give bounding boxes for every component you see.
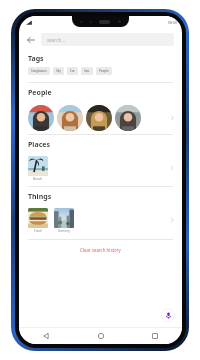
button[interactable]: Sea bbox=[81, 67, 93, 75]
staticText: People bbox=[99, 69, 109, 73]
button[interactable]: Home bbox=[94, 329, 108, 343]
button[interactable]: search... bbox=[41, 33, 174, 46]
button[interactable]: Person 4 bbox=[115, 105, 141, 131]
staticText: Car bbox=[70, 69, 75, 73]
button[interactable]: Recents bbox=[148, 329, 162, 343]
button[interactable]: See more bbox=[166, 214, 178, 226]
button[interactable]: Back bbox=[39, 329, 53, 343]
staticText: Beach bbox=[33, 177, 43, 181]
button[interactable]: People bbox=[96, 67, 112, 75]
staticText: Sunglasses bbox=[31, 69, 47, 73]
staticText: People bbox=[28, 88, 52, 98]
staticText: Food bbox=[34, 229, 42, 233]
staticText: Sea bbox=[84, 69, 90, 73]
button[interactable]: Scenery bbox=[54, 208, 74, 233]
staticText: search... bbox=[47, 37, 65, 43]
staticText: Clear search history bbox=[80, 247, 121, 253]
button[interactable]: Food bbox=[28, 208, 48, 233]
button[interactable]: Beach bbox=[28, 156, 48, 181]
button[interactable]: Voice search bbox=[161, 308, 175, 322]
staticText: 08:00 bbox=[168, 20, 177, 25]
button[interactable]: Car bbox=[67, 67, 78, 75]
button[interactable]: Person 3 bbox=[86, 105, 112, 131]
staticText: Scenery bbox=[58, 229, 70, 233]
button[interactable]: Person 2 bbox=[57, 105, 83, 131]
staticText: Things bbox=[28, 192, 52, 202]
button[interactable]: Sunglasses bbox=[28, 67, 50, 75]
button[interactable]: Sky bbox=[53, 67, 64, 75]
button[interactable]: Person 1 bbox=[28, 105, 54, 131]
button[interactable]: See more bbox=[166, 162, 178, 174]
staticText: Places bbox=[28, 140, 50, 150]
staticText: Tags bbox=[28, 54, 44, 64]
button[interactable]: Back bbox=[23, 32, 38, 47]
button[interactable]: Clear search history bbox=[19, 246, 182, 254]
staticText: Sky bbox=[56, 69, 61, 73]
button[interactable]: See more bbox=[166, 112, 178, 124]
